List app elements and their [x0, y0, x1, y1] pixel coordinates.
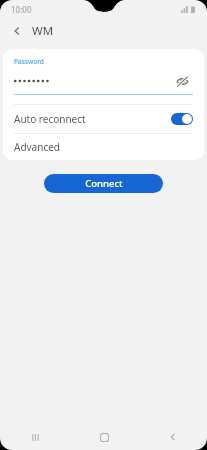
button[interactable]: Hide password — [171, 70, 193, 92]
button[interactable]: Auto reconnect — [3, 105, 204, 133]
staticText: Advanced — [14, 140, 60, 154]
staticText: Password — [14, 57, 44, 66]
staticText: Auto reconnect — [14, 112, 86, 126]
button[interactable]: Back — [6, 20, 28, 42]
button[interactable]: Home — [89, 424, 119, 450]
staticText: 10:00 — [11, 4, 32, 15]
staticText: WM — [32, 23, 54, 39]
button[interactable]: Advanced — [3, 134, 204, 160]
button[interactable]: Connect — [44, 174, 163, 193]
button[interactable]: Back — [158, 424, 188, 450]
button[interactable]: Recents — [20, 424, 50, 450]
staticText: Connect — [85, 177, 123, 190]
button[interactable]: Password — [3, 49, 204, 104]
other: Auto reconnect toggle — [171, 113, 193, 125]
